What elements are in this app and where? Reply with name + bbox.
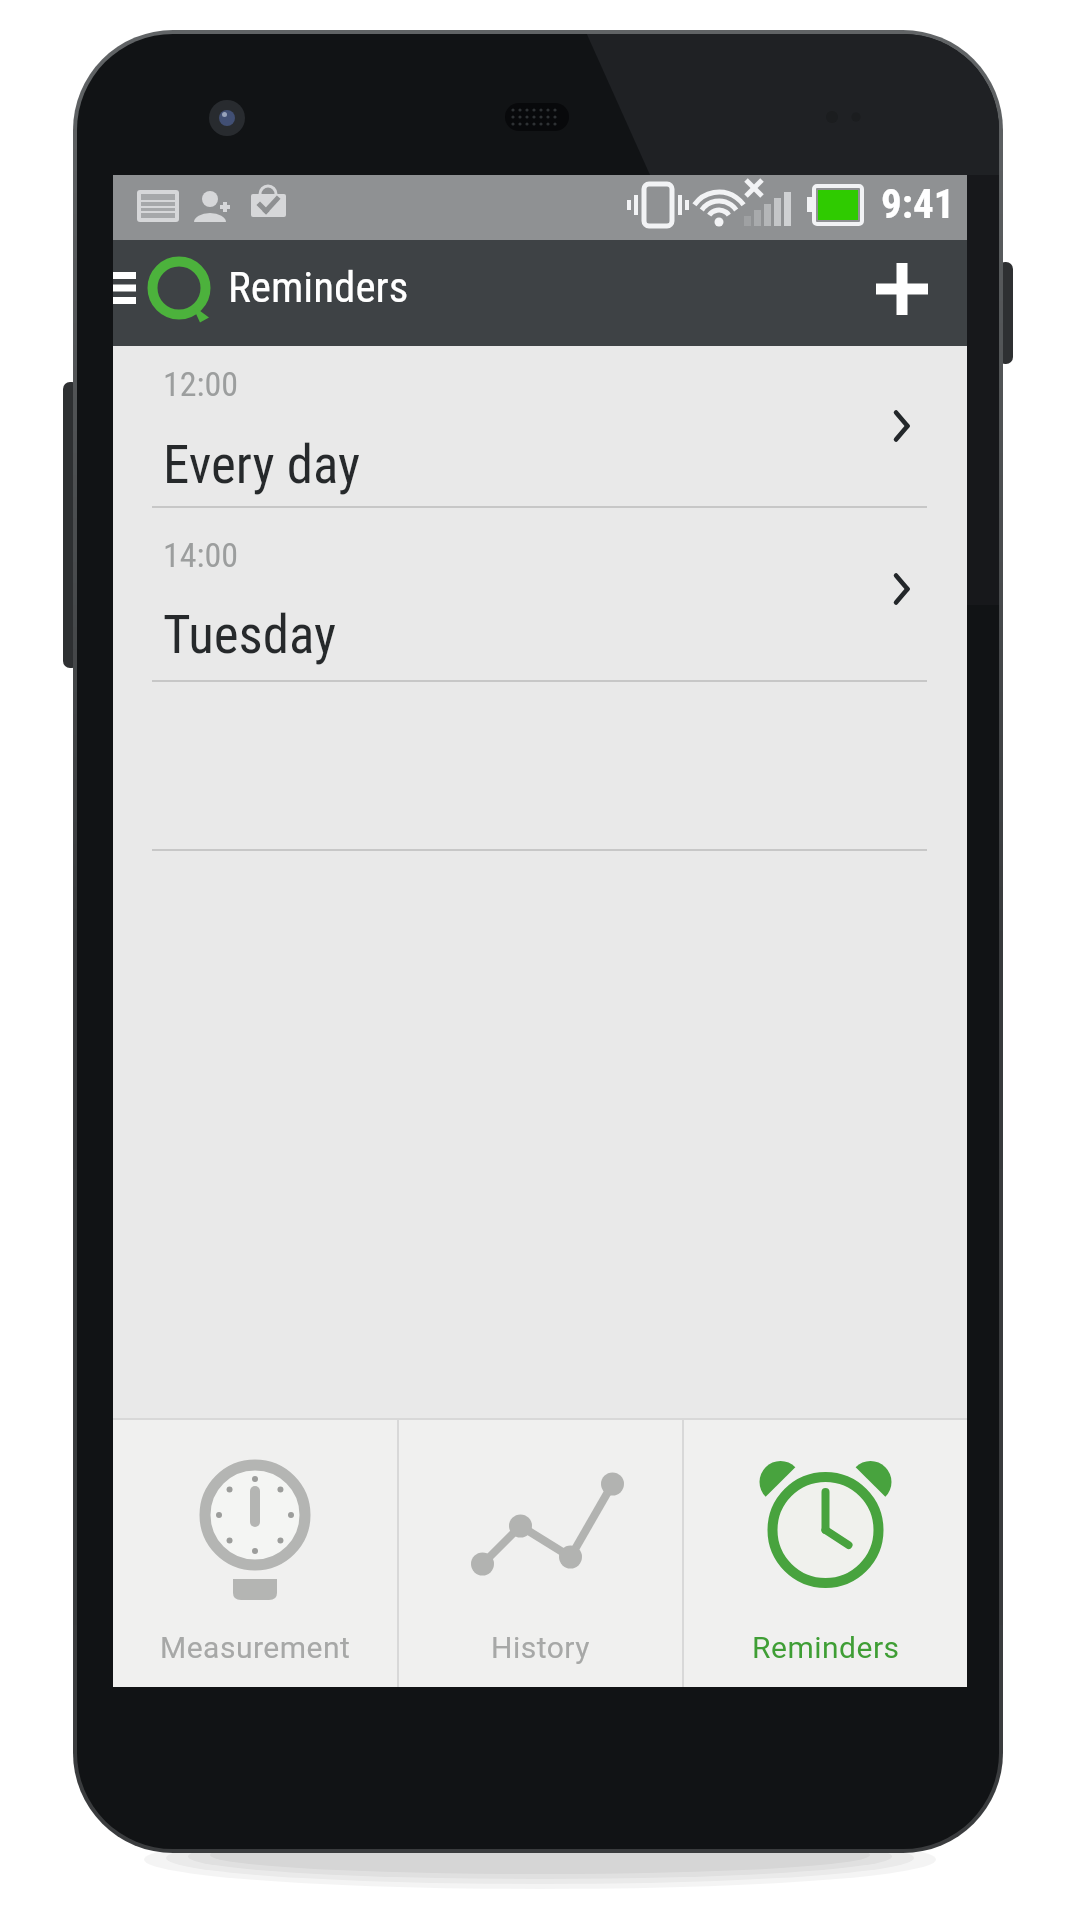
staticText: Every day — [163, 434, 361, 496]
staticText: 9:41 — [881, 180, 955, 228]
staticText: Tuesday — [163, 604, 337, 666]
staticText: Measurement — [160, 1630, 351, 1665]
button[interactable]: 12:00 — [113, 346, 967, 506]
button[interactable]: History — [399, 1420, 682, 1687]
staticText: 12:00 — [163, 364, 239, 404]
staticText: Reminders — [752, 1630, 900, 1665]
button[interactable]: Reminders — [684, 1420, 967, 1687]
staticText: History — [491, 1630, 590, 1665]
button[interactable]: Measurement — [113, 1420, 397, 1687]
staticText: 14:00 — [163, 535, 239, 575]
staticText: Reminders — [228, 262, 409, 312]
button[interactable] — [113, 240, 163, 346]
button[interactable] — [867, 240, 967, 346]
button[interactable]: 14:00 — [113, 508, 967, 680]
